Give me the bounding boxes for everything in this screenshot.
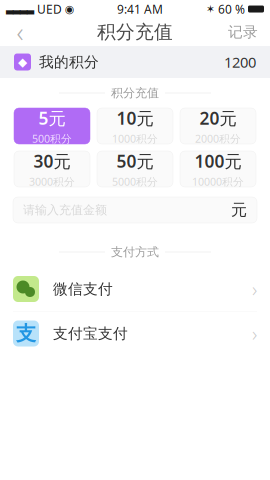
- button[interactable]: 100元: [180, 151, 256, 187]
- staticText: ▃▃▃▃: [6, 4, 34, 14]
- button[interactable]: 5元: [14, 108, 90, 144]
- staticText: 20元: [199, 106, 236, 129]
- button[interactable]: 微信支付: [0, 267, 270, 311]
- button[interactable]: 20元: [180, 108, 256, 144]
- staticText: ✶: [206, 3, 215, 15]
- button[interactable]: 30元: [14, 151, 90, 187]
- staticText: 积分充值: [97, 20, 173, 43]
- staticText: 支付方式: [111, 245, 159, 259]
- staticText: ◆: [18, 55, 27, 69]
- button[interactable]: Back: [0, 18, 40, 46]
- staticText: ‹: [16, 14, 23, 50]
- staticText: 记录: [228, 23, 258, 41]
- button[interactable]: 记录: [228, 18, 270, 46]
- staticText: 30元: [33, 149, 70, 172]
- button[interactable]: 10元: [97, 108, 173, 144]
- staticText: 支: [16, 321, 36, 346]
- staticText: ›: [252, 276, 257, 302]
- staticText: 10000积分: [192, 174, 244, 189]
- staticText: 5元: [38, 106, 65, 129]
- staticText: 2000积分: [195, 131, 241, 146]
- staticText: 100元: [194, 149, 241, 172]
- staticText: 5000积分: [112, 174, 158, 189]
- staticText: 请输入充值金额: [23, 203, 107, 217]
- button[interactable]: 支: [0, 311, 270, 355]
- staticText: 元: [231, 200, 247, 220]
- staticText: 1000积分: [112, 131, 158, 146]
- staticText: 微信支付: [53, 280, 113, 298]
- staticText: UED: [34, 1, 65, 17]
- staticText: 积分充值: [111, 86, 159, 100]
- staticText: 60 %: [215, 1, 248, 17]
- staticText: 500积分: [32, 131, 72, 146]
- staticText: 10元: [116, 106, 153, 129]
- staticText: 50元: [116, 149, 153, 172]
- staticText: ◉: [65, 3, 74, 15]
- staticText: 3000积分: [29, 174, 75, 189]
- staticText: ›: [252, 320, 257, 347]
- button[interactable]: 50元: [97, 151, 173, 187]
- staticText: 9:41 AM: [117, 1, 163, 17]
- staticText: 1200: [224, 52, 256, 72]
- staticText: 支付宝支付: [53, 324, 128, 342]
- staticText: 我的积分: [39, 53, 99, 71]
